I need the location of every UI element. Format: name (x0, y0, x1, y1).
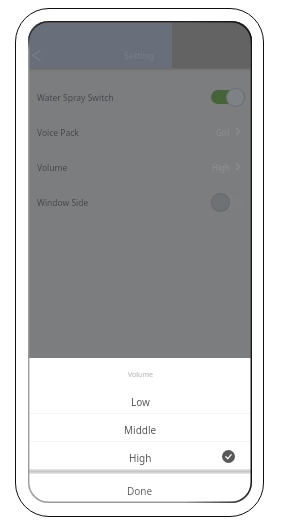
staticText: Done (127, 484, 153, 498)
button[interactable]: Water Spray Switch (28, 79, 252, 114)
staticText: Low (131, 395, 150, 409)
staticText: Water Spray Switch (37, 92, 114, 104)
staticText: Middle (124, 423, 157, 437)
button[interactable]: Low (28, 386, 252, 413)
button[interactable]: Back (28, 43, 48, 67)
staticText: High (129, 451, 152, 465)
button[interactable]: Window Side (28, 184, 252, 219)
staticText: Voice Pack (37, 127, 79, 139)
button[interactable]: Middle (28, 414, 252, 441)
button[interactable]: Voice Pack (28, 114, 252, 149)
staticText: Volume (128, 370, 153, 380)
staticText: High (212, 162, 230, 173)
button[interactable]: High (28, 442, 252, 469)
staticText: Girl (216, 127, 230, 138)
staticText: Setting (124, 49, 154, 61)
button[interactable]: Done (28, 474, 252, 503)
staticText: Volume (37, 162, 68, 174)
button[interactable]: Volume (28, 149, 252, 184)
staticText: Window Side (37, 197, 89, 209)
